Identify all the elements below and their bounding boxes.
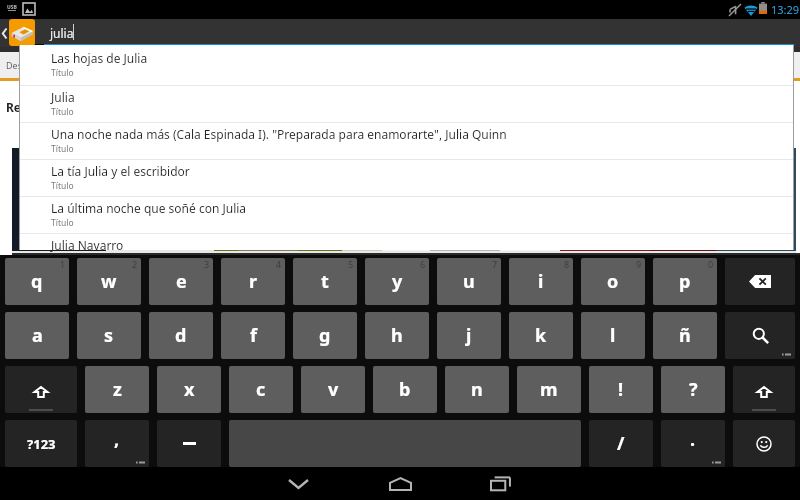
staticText: t <box>321 269 329 294</box>
staticText: j <box>466 323 472 348</box>
staticText: i <box>538 269 544 294</box>
staticText: La última noche que soñé con Julia <box>51 200 247 216</box>
button[interactable]: r <box>221 258 285 305</box>
button[interactable]: k <box>509 312 573 359</box>
button[interactable]: La tía Julia y el escribidor <box>20 160 793 196</box>
button[interactable]: j <box>437 312 501 359</box>
staticText: e <box>176 269 187 294</box>
staticText: La tía Julia y el escribidor <box>51 163 190 179</box>
button[interactable]: o <box>581 258 645 305</box>
button[interactable]: Hide keyboard <box>263 467 333 500</box>
staticText: Una noche nada más (Cala Espinada I). "P… <box>51 126 507 142</box>
staticText: z <box>113 377 122 402</box>
button[interactable]: v <box>301 366 365 413</box>
staticText: 9 <box>636 258 642 270</box>
staticText: 7 <box>492 258 498 270</box>
staticText: Las hojas de Julia <box>51 50 148 66</box>
button[interactable]: , <box>85 420 149 467</box>
button[interactable] <box>733 366 795 413</box>
staticText: Julia <box>51 89 75 105</box>
staticText: ! <box>618 377 624 402</box>
staticText: ñ <box>679 323 691 348</box>
staticText: Destacados <box>6 59 55 71</box>
staticText: k <box>535 323 547 348</box>
button[interactable] <box>733 420 795 467</box>
button[interactable]: Julia Navarro <box>20 234 793 250</box>
button[interactable]: q <box>5 258 69 305</box>
button[interactable]: i <box>509 258 573 305</box>
button[interactable]: ?123 <box>5 420 77 467</box>
button[interactable] <box>157 420 221 467</box>
button[interactable]: ? <box>661 366 725 413</box>
staticText: julia <box>50 25 74 41</box>
staticText: Julia Navarro <box>51 237 124 253</box>
button[interactable]: z <box>85 366 149 413</box>
button[interactable]: Una noche nada más (Cala Espinada I). "P… <box>20 123 793 159</box>
button[interactable] <box>5 366 77 413</box>
button[interactable]: a <box>5 312 69 359</box>
staticText: 13:29 <box>771 2 800 17</box>
button[interactable]: Home <box>365 467 435 500</box>
button[interactable]: m <box>517 366 581 413</box>
staticText: 5 <box>348 258 354 270</box>
staticText: y <box>392 269 403 294</box>
button[interactable]: t <box>293 258 357 305</box>
staticText: c <box>256 377 266 402</box>
button[interactable]: / <box>589 420 653 467</box>
staticText: n <box>471 377 483 402</box>
staticText: Título <box>51 106 74 118</box>
button[interactable]: . <box>661 420 725 467</box>
staticText: g <box>319 323 331 348</box>
staticText: . <box>690 427 696 452</box>
button[interactable]: p <box>653 258 717 305</box>
button[interactable] <box>725 258 795 305</box>
button[interactable]: d <box>149 312 213 359</box>
staticText: q <box>31 269 43 294</box>
button[interactable]: Julia <box>20 86 793 122</box>
staticText: w <box>101 269 117 294</box>
staticText: Título <box>51 217 74 229</box>
button[interactable]: w <box>77 258 141 305</box>
staticText: u <box>463 269 475 294</box>
staticText: f <box>250 323 257 348</box>
button[interactable] <box>725 312 795 359</box>
button[interactable]: h <box>365 312 429 359</box>
staticText: 3 <box>204 258 210 270</box>
button[interactable]: Recent apps <box>465 467 535 500</box>
staticText: o <box>607 269 619 294</box>
button[interactable]: x <box>157 366 221 413</box>
staticText: 1 <box>60 258 66 270</box>
button[interactable]: e <box>149 258 213 305</box>
button[interactable]: n <box>445 366 509 413</box>
staticText: ? <box>689 377 698 402</box>
staticText: s <box>104 323 114 348</box>
button[interactable]: u <box>437 258 501 305</box>
staticText: 8 <box>564 258 570 270</box>
staticText: 2 <box>132 258 138 270</box>
button[interactable]: y <box>365 258 429 305</box>
staticText: v <box>328 377 339 402</box>
staticText: m <box>540 377 558 402</box>
button[interactable]: c <box>229 366 293 413</box>
button[interactable]: s <box>77 312 141 359</box>
staticText: ?123 <box>27 435 56 453</box>
staticText: p <box>679 269 691 294</box>
button[interactable]: g <box>293 312 357 359</box>
button[interactable]: l <box>581 312 645 359</box>
button[interactable]: f <box>221 312 285 359</box>
button[interactable]: ñ <box>653 312 717 359</box>
button[interactable]: Las hojas de Julia <box>20 45 793 85</box>
button[interactable]: b <box>373 366 437 413</box>
staticText: a <box>32 323 43 348</box>
button[interactable]: App icon <box>9 19 35 46</box>
staticText: Título <box>51 67 74 79</box>
button[interactable]: ! <box>589 366 653 413</box>
staticText: / <box>617 431 625 456</box>
staticText: h <box>391 323 403 348</box>
button[interactable]: La última noche que soñé con Julia <box>20 197 793 233</box>
button[interactable]: Navigate up <box>0 19 9 47</box>
staticText: Título <box>51 180 74 192</box>
staticText: , <box>114 427 120 452</box>
staticText: x <box>184 377 195 402</box>
